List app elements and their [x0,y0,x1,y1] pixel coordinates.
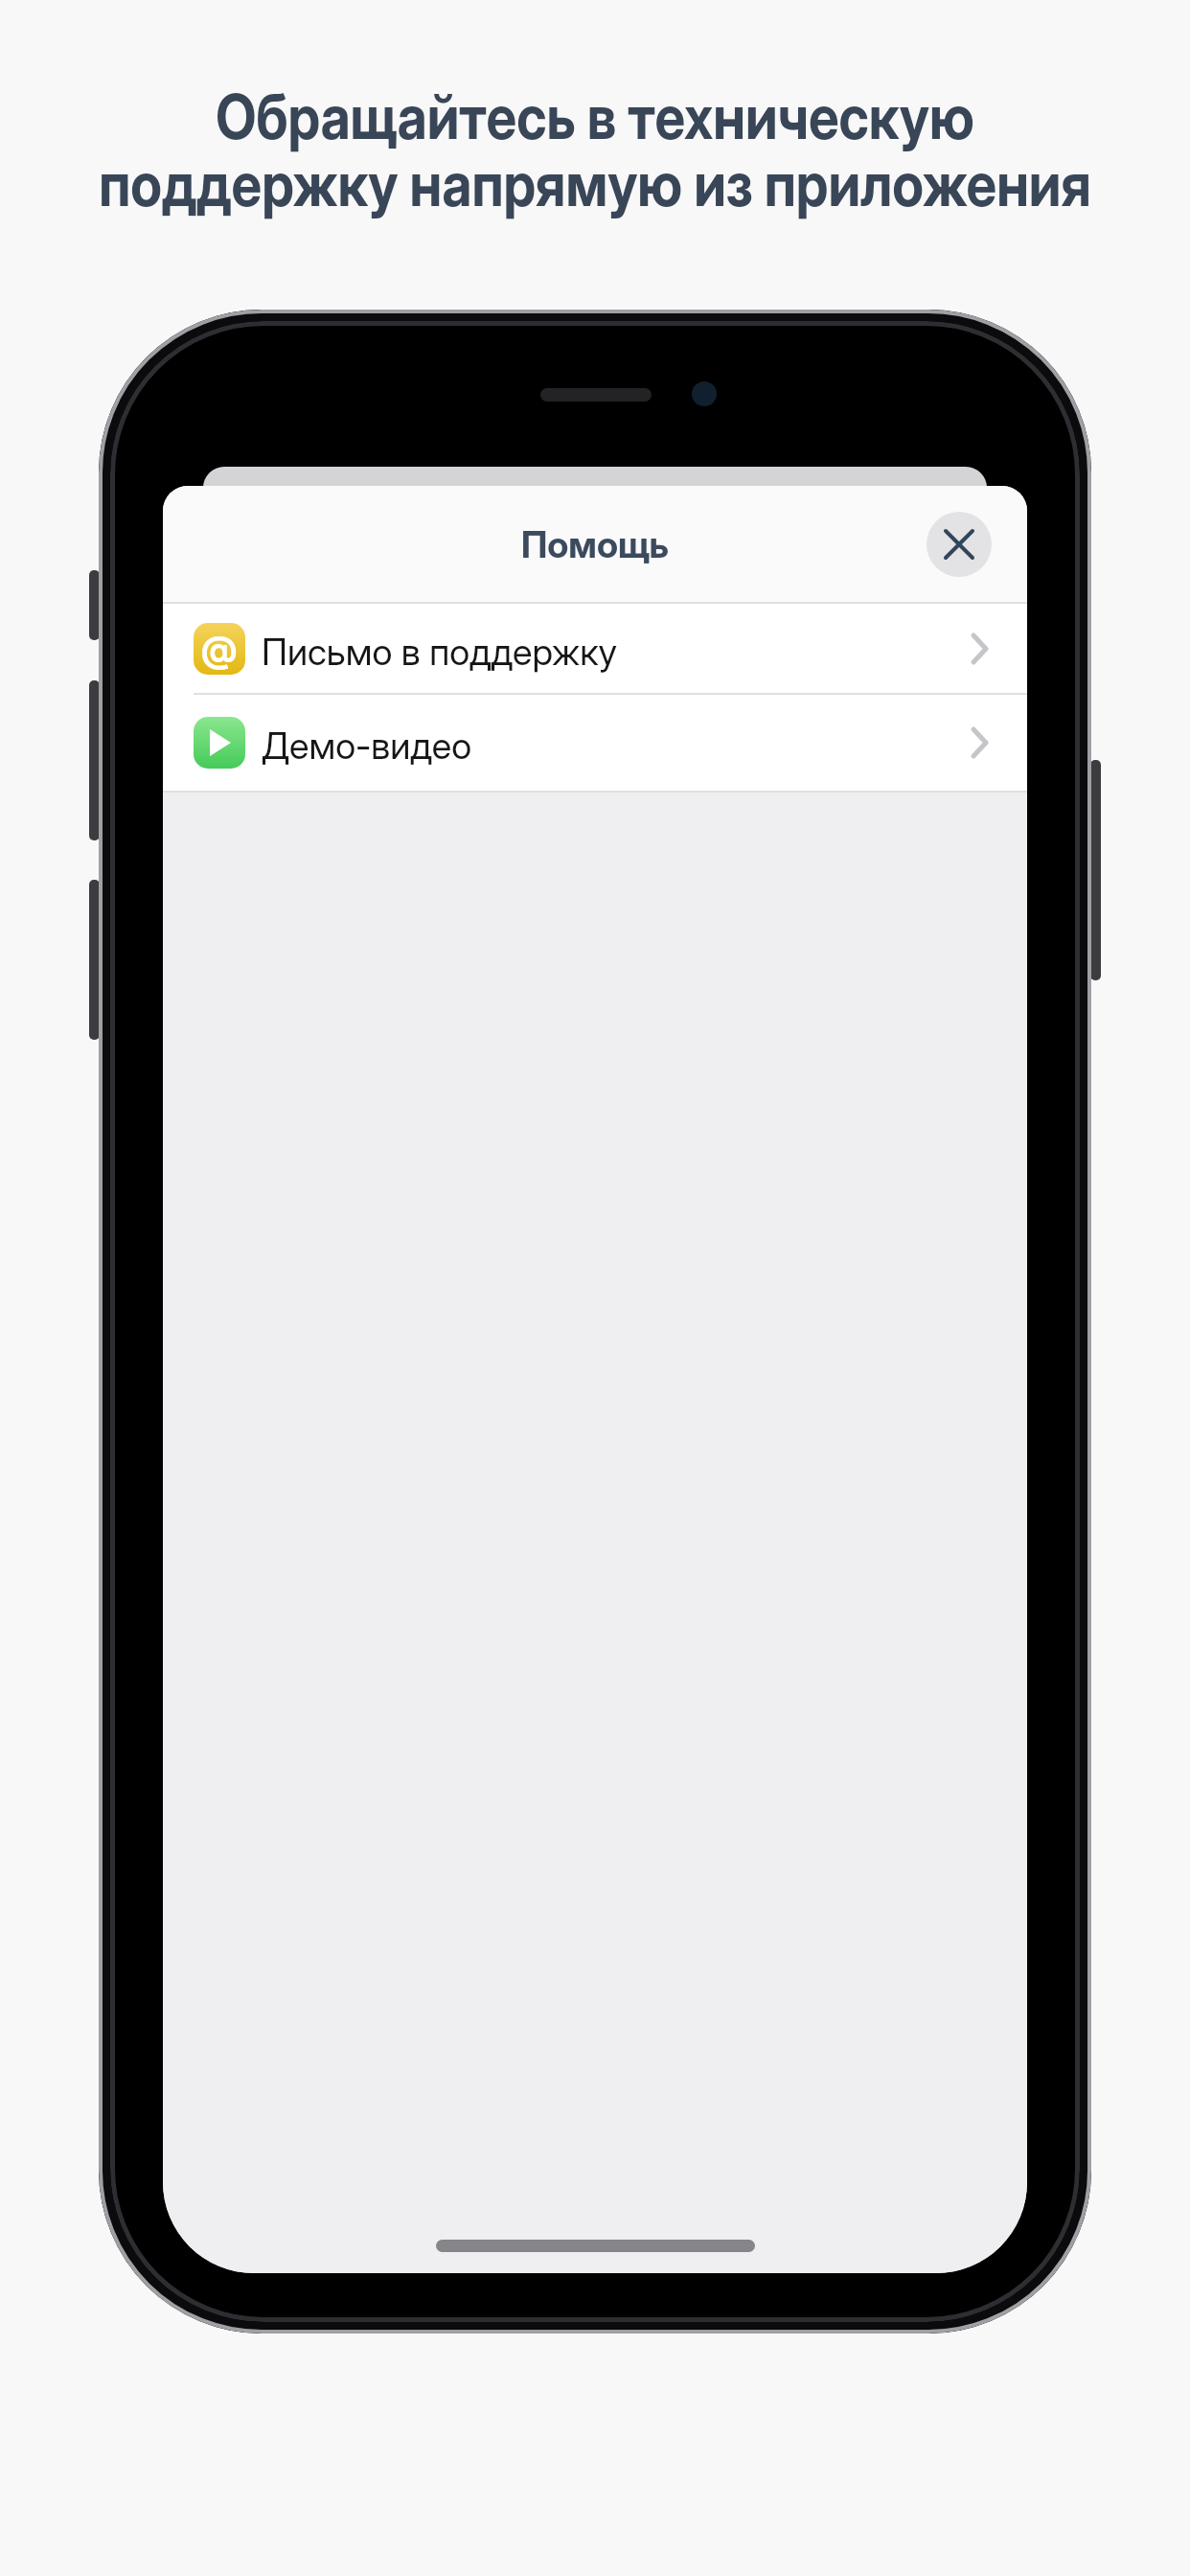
staticText: Демо-видео [262,724,472,768]
button[interactable]: Демо-видео [163,695,1027,791]
staticText: Помощь [521,522,670,566]
staticText: @ [201,628,238,671]
staticText: Письмо в поддержку [262,630,617,674]
staticText: Обращайтесь в техническую поддержку напр… [71,80,1119,220]
button[interactable]: @ [163,604,1027,693]
button[interactable] [927,512,992,577]
